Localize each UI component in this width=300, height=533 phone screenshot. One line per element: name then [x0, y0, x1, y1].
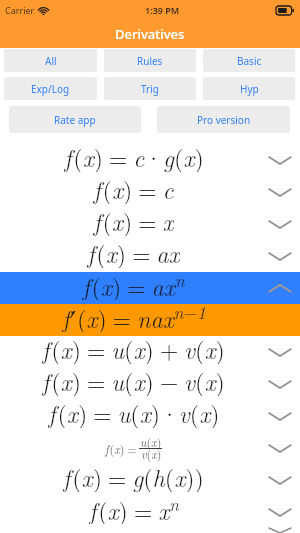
staticText: 1:39 PM: [145, 4, 180, 16]
button[interactable]: Basic: [203, 49, 295, 72]
other: Expand: [269, 349, 291, 356]
button[interactable]: f′ (x) = naxn−1: [0, 304, 300, 336]
staticText: f (x) = c·g(x): [64, 140, 204, 172]
button[interactable]: f (x) = xn: [0, 496, 300, 528]
button[interactable]: f (x) = c·g(x): [0, 144, 300, 176]
staticText: f (x) = c: [93, 172, 174, 204]
staticText: f′ (x) = naxn−1: [62, 300, 206, 332]
staticText: f (x) = x: [93, 204, 174, 236]
other: Expand: [269, 528, 291, 533]
other: Expand: [269, 445, 291, 452]
staticText: Rules: [137, 54, 163, 68]
staticText: f (x) = u(x) − v(x): [42, 364, 225, 396]
button[interactable]: f (x) = ax: [0, 528, 300, 533]
staticText: f (x) = g(h(x)): [63, 460, 204, 492]
other: Expand: [269, 381, 291, 388]
button[interactable]: f (x) = u(x) + v(x): [0, 336, 300, 368]
staticText: Derivatives: [115, 25, 185, 43]
button[interactable]: f (x) = axn: [0, 272, 300, 304]
button[interactable]: Trig: [104, 77, 196, 100]
other: Expand: [269, 477, 291, 484]
button[interactable]: All: [4, 49, 97, 72]
staticText: Hyp: [240, 82, 259, 96]
button[interactable]: f (x) = u(x)·v(x): [0, 400, 300, 432]
staticText: Exp/Log: [31, 82, 70, 96]
button[interactable]: f (x) = c: [0, 176, 300, 208]
staticText: f (x) = u(x) + v(x): [42, 332, 225, 364]
other: Expand: [269, 253, 291, 260]
button[interactable]: Pro version: [157, 106, 290, 133]
button[interactable]: f (x) = u(x) − v(x): [0, 368, 300, 400]
staticText: v(x): [141, 445, 162, 462]
button[interactable]: Rate app: [9, 106, 141, 133]
staticText: All: [45, 54, 57, 68]
staticText: Basic: [237, 54, 262, 68]
button[interactable]: Rules: [104, 49, 196, 72]
other: Expand: [269, 509, 291, 516]
staticText: f (x) = u(x)·v(x): [48, 396, 220, 428]
button[interactable]: Exp/Log: [4, 77, 97, 100]
button[interactable]: f (x) = x: [0, 208, 300, 240]
other: Expand: [269, 413, 291, 420]
other: Collapse: [269, 285, 291, 292]
staticText: f (x) =: [105, 440, 137, 457]
staticText: f (x) = axn: [82, 268, 185, 300]
button[interactable]: f (x) = ax: [0, 240, 300, 272]
staticText: Trig: [141, 82, 159, 96]
other: Expand: [269, 157, 291, 164]
staticText: f (x) = xn: [89, 492, 179, 524]
button[interactable]: Hyp: [203, 77, 295, 100]
button[interactable]: f (x) = g(h(x)): [0, 464, 300, 496]
staticText: u(x): [140, 433, 162, 450]
staticText: Pro version: [197, 113, 251, 127]
other: Expand: [269, 189, 291, 196]
staticText: Carrier: [5, 4, 35, 16]
staticText: f (x) = ax: [87, 236, 180, 268]
other: Expand: [269, 221, 291, 228]
staticText: Rate app: [54, 113, 96, 127]
button[interactable]: f (x) =: [0, 432, 300, 464]
